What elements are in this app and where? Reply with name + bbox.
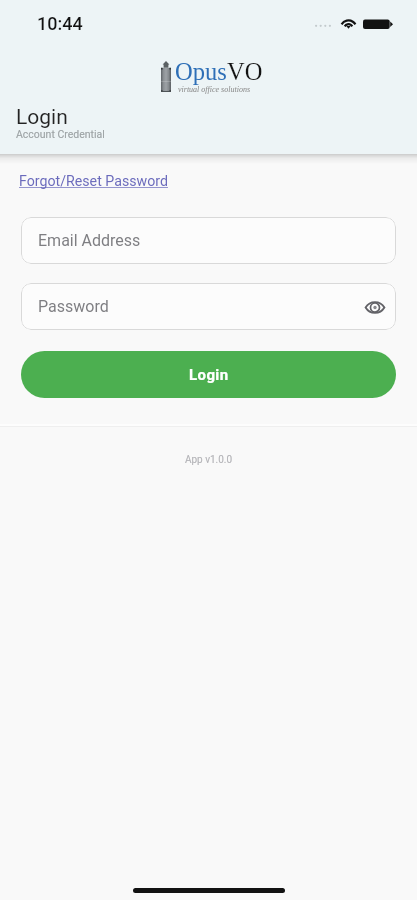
button[interactable]: Show password [362, 294, 388, 320]
staticText: App v1.0.0 [0, 454, 417, 466]
staticText: Opus [175, 58, 227, 85]
button[interactable]: Password [21, 283, 396, 330]
staticText: VO [227, 58, 263, 85]
staticText: Login [189, 366, 229, 384]
staticText: Login [16, 105, 68, 130]
staticText: Email Address [38, 231, 141, 250]
staticText: virtual office solutions [178, 85, 250, 94]
staticText: Account Credential [16, 128, 105, 140]
staticText: Forgot/Reset Password [19, 173, 168, 190]
button[interactable]: Login [21, 351, 396, 398]
button[interactable]: Email Address [21, 217, 396, 264]
staticText: Password [38, 297, 109, 316]
staticText: 10:44 [37, 13, 83, 34]
button[interactable]: Forgot/Reset Password [19, 173, 168, 190]
